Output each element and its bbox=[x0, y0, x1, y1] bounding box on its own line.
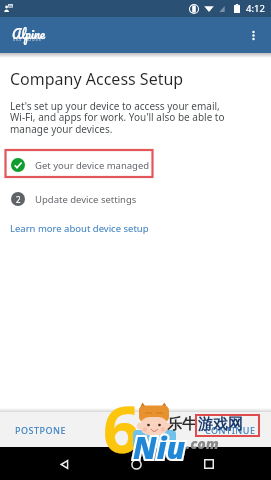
staticText: 游戏网 bbox=[198, 415, 243, 434]
button[interactable]: POSTPONE bbox=[6, 417, 76, 443]
staticText: 6 bbox=[103, 385, 140, 472]
staticText: POSTPONE bbox=[15, 424, 67, 436]
staticText: CONTINUE bbox=[205, 424, 256, 436]
staticText: Learn more about device setup bbox=[10, 222, 149, 235]
button[interactable]: Home bbox=[124, 452, 148, 476]
staticText: Company Access Setup bbox=[10, 68, 184, 90]
staticText: Niu bbox=[133, 427, 186, 468]
button[interactable]: More options bbox=[235, 17, 271, 53]
button[interactable]: CONTINUE bbox=[196, 417, 265, 443]
button[interactable]: Recents bbox=[197, 452, 221, 476]
staticText: SKI HOUSE bbox=[13, 37, 43, 42]
button[interactable]: Back bbox=[52, 452, 76, 476]
button[interactable]: Get your device managed bbox=[0, 148, 271, 182]
staticText: Update device settings bbox=[35, 193, 137, 206]
staticText: Alpine bbox=[12, 23, 45, 44]
staticText: .com bbox=[186, 434, 219, 453]
button[interactable]: Learn more about device setup bbox=[10, 220, 149, 237]
staticText: 乐牛 bbox=[167, 415, 197, 434]
staticText: 2 bbox=[16, 194, 21, 205]
staticText: 4:12 bbox=[246, 2, 265, 15]
staticText: Niu bbox=[133, 427, 186, 468]
button[interactable]: 2 bbox=[0, 182, 271, 216]
staticText: Let's set up your device to access your … bbox=[10, 99, 233, 136]
staticText: Get your device managed bbox=[35, 159, 150, 172]
